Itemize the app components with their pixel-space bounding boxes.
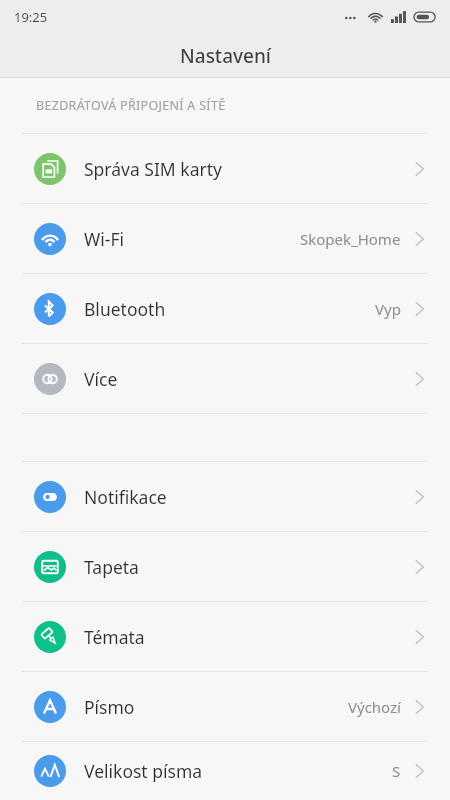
button[interactable]: Notifikace <box>0 462 450 531</box>
button[interactable]: Velikost písma <box>0 742 450 800</box>
staticText: 19:25 <box>14 8 48 26</box>
staticText: Skopek_Home <box>300 229 401 249</box>
button[interactable]: Wi-Fi <box>0 204 450 273</box>
staticText: Více <box>84 367 118 391</box>
staticText: Velikost písma <box>84 759 203 783</box>
staticText: Výchozí <box>348 697 401 717</box>
staticText: Písmo <box>84 695 135 719</box>
staticText: Vyp <box>375 299 401 319</box>
button[interactable]: Písmo <box>0 672 450 741</box>
staticText: Notifikace <box>84 485 167 509</box>
staticText: Témata <box>84 625 145 649</box>
button[interactable]: Více <box>0 344 450 413</box>
button[interactable]: Témata <box>0 602 450 671</box>
button[interactable]: Bluetooth <box>0 274 450 343</box>
staticText: Bluetooth <box>84 297 166 321</box>
staticText: Správa SIM karty <box>84 157 222 181</box>
staticText: Nastavení <box>180 43 271 69</box>
button[interactable]: Tapeta <box>0 532 450 601</box>
staticText: BEZDRÁTOVÁ PŘIPOJENÍ A SÍTĚ <box>36 97 226 114</box>
staticText: S <box>392 761 401 781</box>
staticText: Wi-Fi <box>84 227 125 251</box>
button[interactable]: Správa SIM karty <box>0 134 450 203</box>
staticText: Tapeta <box>84 555 139 579</box>
